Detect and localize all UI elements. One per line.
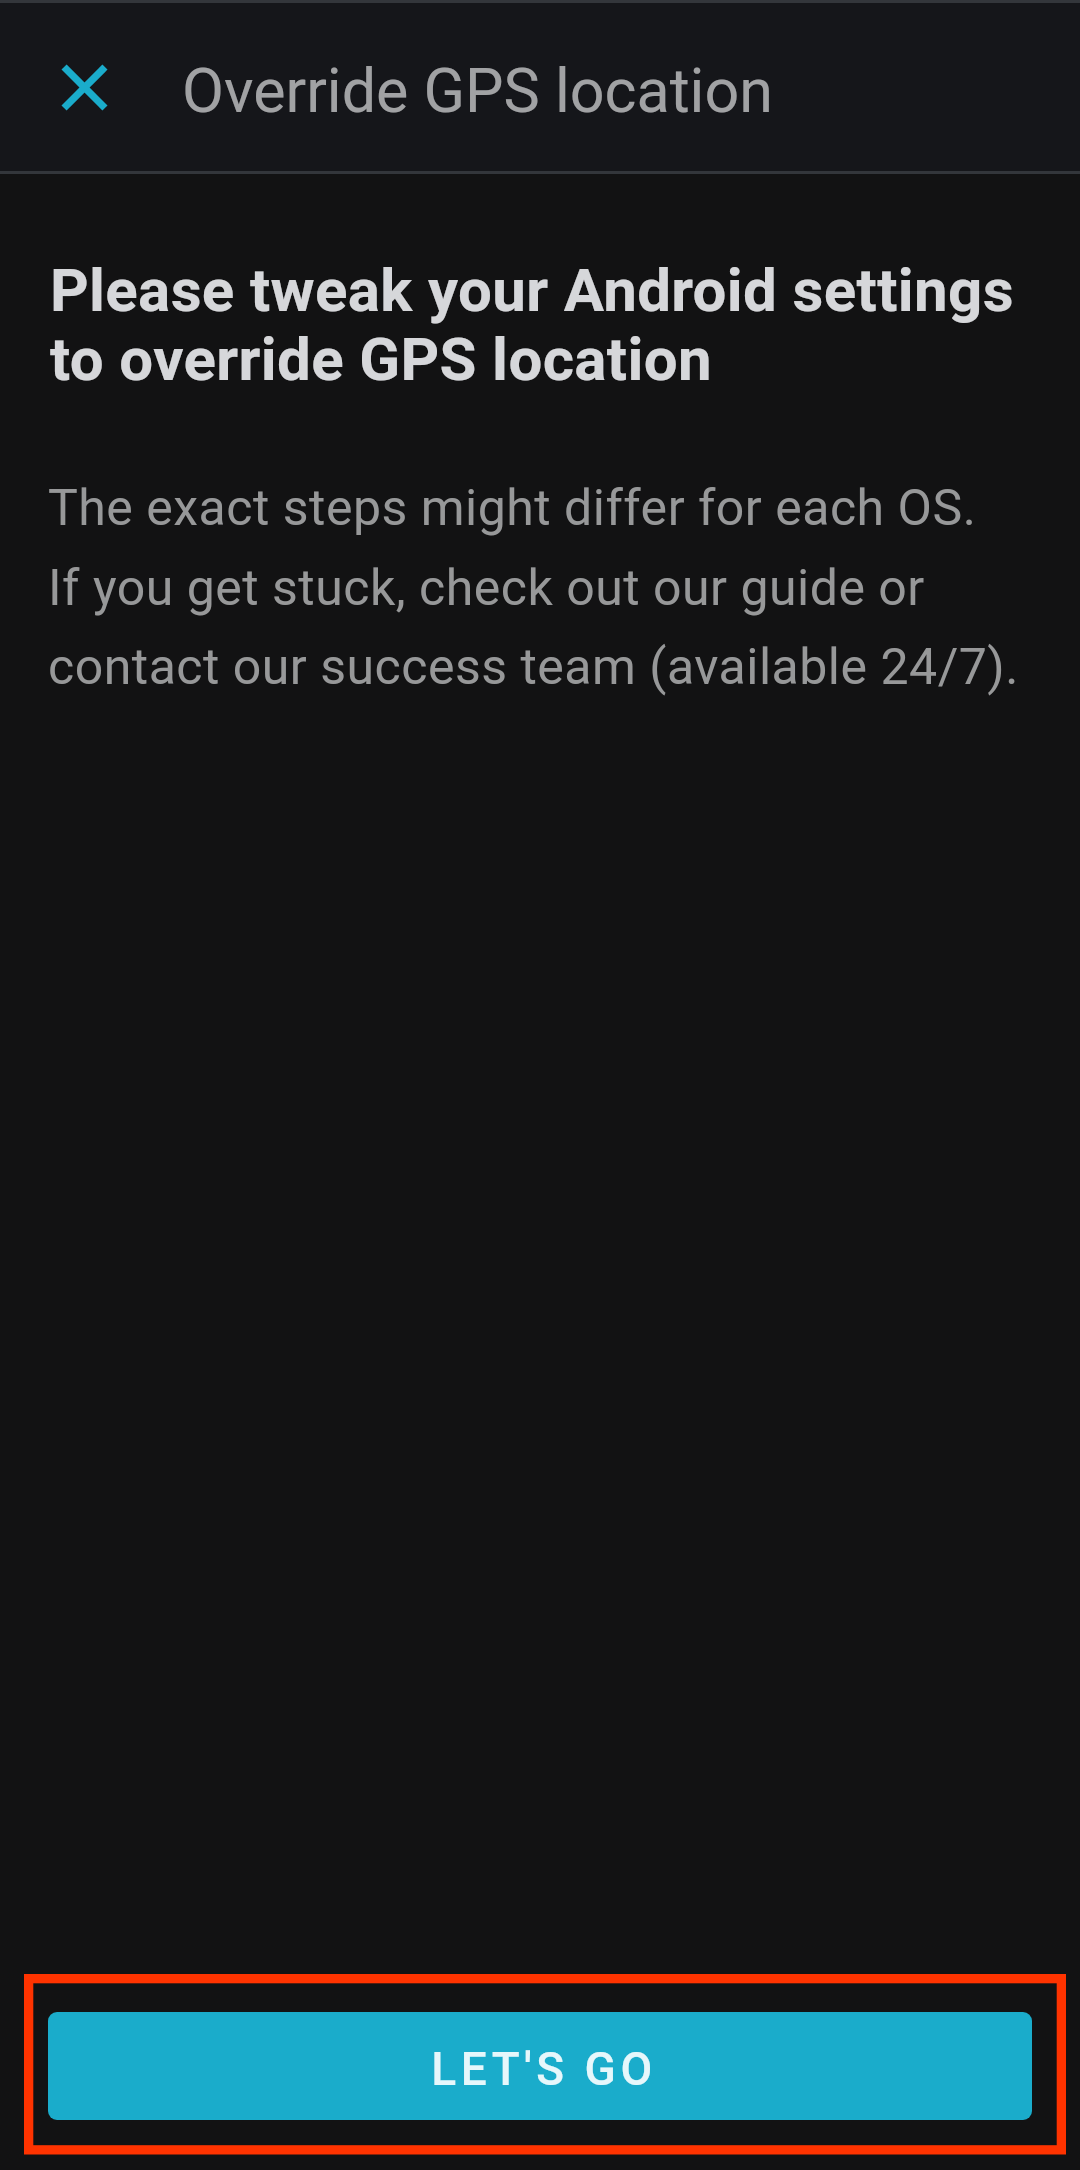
staticText: Please tweak your Android settings to ov… bbox=[50, 255, 1014, 394]
staticText: LET'S GO bbox=[431, 2042, 657, 2096]
staticText: Override GPS location bbox=[182, 55, 773, 126]
staticText: The exact steps might differ for each OS… bbox=[48, 479, 1019, 696]
button[interactable]: LET'S GO bbox=[48, 2012, 1032, 2120]
button[interactable]: Close bbox=[0, 3, 168, 171]
